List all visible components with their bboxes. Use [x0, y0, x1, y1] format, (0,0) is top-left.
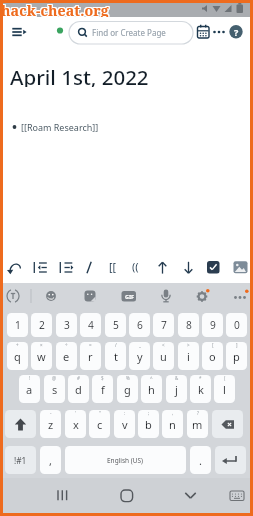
button[interactable]: v	[114, 410, 135, 438]
button[interactable]: 5	[105, 313, 126, 337]
button[interactable]: z	[40, 410, 61, 438]
button[interactable]	[191, 285, 213, 307]
button[interactable]: 8	[178, 313, 199, 337]
staticText: hack-cheat.org	[2, 0, 110, 16]
button[interactable]: s	[44, 375, 65, 403]
button[interactable]	[155, 285, 177, 307]
staticText: n	[169, 417, 176, 432]
button[interactable]	[40, 285, 62, 307]
button[interactable]: r	[80, 342, 101, 370]
staticText: <	[162, 342, 165, 348]
staticText: 8	[186, 318, 192, 332]
button[interactable]: o	[202, 342, 223, 370]
button[interactable]	[178, 258, 196, 276]
staticText: d	[75, 382, 82, 397]
button[interactable]: d	[68, 375, 89, 403]
button[interactable]	[2, 285, 24, 307]
button[interactable]: ?	[230, 25, 242, 39]
staticText: ?	[197, 410, 199, 416]
staticText: @	[52, 375, 57, 381]
button[interactable]: j	[166, 375, 187, 403]
button[interactable]: y	[129, 342, 150, 370]
button[interactable]: 6	[129, 313, 150, 337]
staticText: m	[192, 417, 203, 432]
button[interactable]: b	[138, 410, 159, 438]
staticText: =	[89, 342, 92, 348]
staticText: 4	[88, 318, 94, 332]
button[interactable]	[5, 410, 36, 438]
button[interactable]: h	[141, 375, 162, 403]
staticText: v	[122, 417, 128, 432]
button[interactable]: !#1	[5, 446, 36, 474]
button[interactable]: 7	[153, 313, 174, 337]
button[interactable]: 0	[226, 313, 247, 337]
button[interactable]	[48, 482, 76, 510]
staticText: English (US)	[107, 456, 144, 465]
staticText: ((	[132, 260, 139, 274]
button[interactable]: i	[178, 342, 199, 370]
staticText: i	[187, 349, 190, 364]
button[interactable]: 4	[80, 313, 101, 337]
button[interactable]: m	[187, 410, 208, 438]
staticText: "	[99, 410, 101, 416]
button[interactable]	[5, 258, 23, 276]
button[interactable]: q	[7, 342, 28, 370]
button[interactable]	[118, 285, 140, 307]
button[interactable]: u	[153, 342, 174, 370]
staticText: ÷	[65, 342, 68, 348]
button[interactable]: g	[117, 375, 138, 403]
button[interactable]	[31, 258, 49, 276]
button[interactable]: k	[190, 375, 211, 403]
button[interactable]	[113, 482, 141, 510]
button[interactable]: ((	[127, 258, 143, 276]
button[interactable]: English (US)	[65, 446, 186, 474]
button[interactable]	[223, 482, 251, 510]
button[interactable]	[230, 258, 248, 276]
button[interactable]: p	[226, 342, 247, 370]
staticText: ]	[236, 342, 238, 348]
staticText: 9	[210, 318, 216, 332]
button[interactable]	[79, 285, 101, 307]
staticText: hack-cheat.org	[2, 1, 110, 17]
button[interactable]: f	[92, 375, 113, 403]
button[interactable]	[215, 446, 246, 474]
button[interactable]: a	[19, 375, 40, 403]
staticText: l	[223, 382, 226, 397]
button[interactable]	[8, 24, 30, 42]
staticText: g	[124, 382, 131, 397]
staticText: *	[199, 375, 202, 381]
button[interactable]: ,	[40, 446, 61, 474]
staticText: >	[187, 342, 190, 348]
button[interactable]: x	[65, 410, 86, 438]
button[interactable]	[80, 258, 98, 276]
button[interactable]: l	[214, 375, 235, 403]
staticText: %	[126, 375, 130, 381]
button[interactable]	[204, 258, 222, 276]
button[interactable]	[57, 258, 75, 276]
button[interactable]: 3	[56, 313, 77, 337]
staticText: (	[224, 375, 226, 381]
button[interactable]	[152, 258, 170, 276]
button[interactable]: 1	[7, 313, 28, 337]
button[interactable]: n	[162, 410, 183, 438]
button[interactable]: e	[56, 342, 77, 370]
button[interactable]: t	[105, 342, 126, 370]
button[interactable]: w	[31, 342, 52, 370]
button[interactable]: 9	[202, 313, 223, 337]
staticText: 7	[161, 318, 167, 332]
button[interactable]: .	[190, 446, 211, 474]
staticText: 1	[15, 318, 21, 332]
button[interactable]	[212, 410, 243, 438]
staticText: $	[101, 375, 104, 381]
staticText: GIF	[125, 293, 135, 300]
staticText: 6	[137, 318, 143, 332]
button[interactable]: [[	[104, 258, 120, 276]
button[interactable]	[177, 482, 205, 510]
button[interactable]	[69, 21, 193, 44]
button[interactable]: 2	[31, 313, 52, 337]
staticText: ^	[150, 375, 153, 381]
button[interactable]	[229, 285, 251, 307]
button[interactable]: c	[89, 410, 110, 438]
staticText: 3	[64, 318, 70, 332]
staticText: ,	[172, 410, 174, 416]
